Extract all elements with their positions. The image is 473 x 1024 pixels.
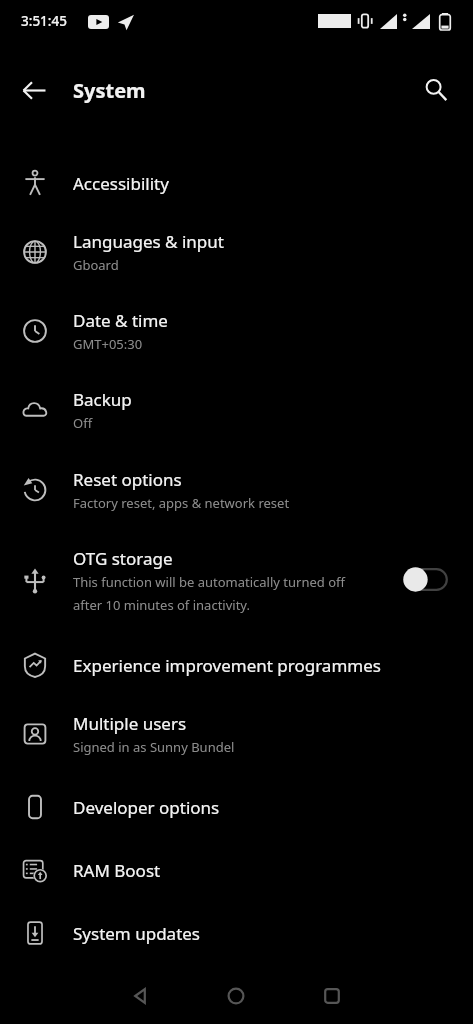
button[interactable]: Date & time — [0, 298, 473, 364]
button[interactable]: Accessibility — [0, 158, 473, 208]
button[interactable]: System updates — [0, 908, 473, 958]
button[interactable]: RAM Boost — [0, 845, 473, 895]
staticText: Accessibility — [73, 172, 169, 195]
staticText: Experience improvement programmes — [73, 654, 381, 677]
staticText: Backup — [73, 388, 132, 411]
staticText: This function will be automatically turn… — [73, 573, 345, 591]
button[interactable]: OTG storage — [0, 534, 473, 626]
staticText: System — [73, 77, 146, 104]
staticText: after 10 minutes of inactivity. — [73, 596, 250, 614]
button[interactable]: Experience improvement programmes — [0, 640, 473, 690]
staticText: RAM Boost — [73, 859, 161, 882]
button[interactable]: Back — [10, 66, 58, 114]
staticText: 3:51:45 — [21, 12, 67, 30]
staticText: System updates — [73, 922, 201, 945]
staticText: Date & time — [73, 309, 168, 332]
button[interactable]: Home — [212, 972, 260, 1020]
staticText: Signed in as Sunny Bundel — [73, 738, 235, 756]
staticText: Gboard — [73, 256, 119, 274]
staticText: GMT+05:30 — [73, 335, 143, 353]
staticText: Developer options — [73, 796, 220, 819]
button[interactable]: Back — [116, 972, 164, 1020]
staticText: Languages & input — [73, 230, 224, 253]
button[interactable]: OTG storage switch, off — [396, 558, 454, 600]
button[interactable]: Languages & input — [0, 219, 473, 285]
staticText: Factory reset, apps & network reset — [73, 494, 290, 512]
button[interactable]: Multiple users — [0, 701, 473, 767]
staticText: Off — [73, 414, 93, 432]
button[interactable]: Developer options — [0, 782, 473, 832]
button[interactable]: Search — [412, 66, 460, 114]
staticText: Reset options — [73, 468, 182, 491]
button[interactable]: Reset options — [0, 457, 473, 523]
staticText: Multiple users — [73, 712, 187, 735]
staticText: OTG storage — [73, 547, 173, 570]
button[interactable]: Backup — [0, 377, 473, 443]
button[interactable]: Recent apps — [308, 972, 356, 1020]
